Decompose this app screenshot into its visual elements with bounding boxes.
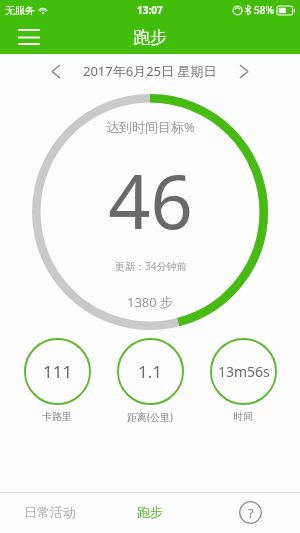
staticText: 跑步 xyxy=(137,504,163,520)
button[interactable]: Help xyxy=(200,493,300,531)
button[interactable]: Previous day xyxy=(43,58,69,84)
staticText: 无服务 xyxy=(5,4,35,17)
staticText: 时间 xyxy=(233,410,253,423)
staticText: ? xyxy=(248,504,254,522)
button[interactable]: 日常活动 xyxy=(0,493,100,531)
button[interactable]: Menu xyxy=(14,22,44,52)
staticText: 58% xyxy=(254,3,274,17)
staticText: 13m56s xyxy=(218,362,270,381)
staticText: 111 xyxy=(43,360,73,383)
staticText: 1380 步 xyxy=(127,293,174,311)
button[interactable]: Next day xyxy=(231,58,257,84)
staticText: 2017年6月25日 星期日 xyxy=(83,62,217,80)
button[interactable]: 跑步 xyxy=(100,493,200,531)
button[interactable]: 13m56s xyxy=(200,338,286,423)
staticText: 达到时间目标% xyxy=(106,118,195,136)
staticText: 跑步 xyxy=(133,27,167,48)
staticText: 13:07 xyxy=(137,3,163,17)
staticText: 46 xyxy=(108,150,193,251)
staticText: 1.1 xyxy=(138,360,163,383)
staticText: 更新：34分钟前 xyxy=(115,259,187,273)
staticText: 卡路里 xyxy=(42,410,72,423)
button[interactable]: 1.1 xyxy=(107,338,193,424)
button[interactable]: 111 xyxy=(14,338,100,423)
staticText: 距离(公里) xyxy=(127,410,173,424)
staticText: 日常活动 xyxy=(24,504,76,520)
